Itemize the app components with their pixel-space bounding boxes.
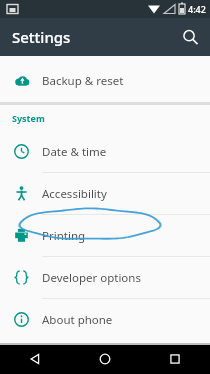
staticText: System — [12, 112, 45, 124]
staticText: Settings — [12, 27, 71, 47]
button[interactable]: About phone — [0, 299, 210, 340]
staticText: Accessibility — [42, 186, 107, 202]
button[interactable]: Date & time — [0, 131, 210, 173]
button[interactable]: Backup & reset — [0, 60, 210, 101]
button[interactable]: Home — [70, 343, 140, 374]
button[interactable]: Developer options — [0, 257, 210, 299]
staticText: Backup & reset — [42, 73, 124, 89]
button[interactable]: Search — [176, 23, 204, 51]
button[interactable]: Printing — [0, 215, 210, 257]
button[interactable]: Accessibility — [0, 173, 210, 215]
button[interactable]: Back — [0, 343, 70, 374]
staticText: 4:42 — [188, 3, 206, 15]
staticText: About phone — [42, 312, 113, 328]
staticText: Date & time — [42, 144, 107, 160]
staticText: Developer options — [42, 270, 141, 286]
button[interactable]: Recents — [140, 343, 210, 374]
staticText: Printing — [42, 228, 86, 244]
